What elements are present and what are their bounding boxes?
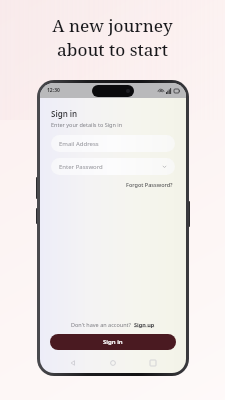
button[interactable]: Recent apps [146,356,160,370]
staticText: Enter Password [59,163,103,171]
staticText: Email Address [59,140,99,148]
staticText: Sign in [51,108,78,119]
staticText: 12:30 [47,87,60,94]
button[interactable]: Sign in [50,334,176,350]
button[interactable]: Back [66,356,80,370]
button[interactable]: Home [106,356,120,370]
staticText: Don't have an account? [71,321,133,328]
staticText: Enter your details to Sign in [51,121,123,128]
staticText: Sign in [103,338,123,346]
button[interactable]: Forgot Password? [124,179,175,190]
staticText: A new journey [52,14,173,37]
other: Show password [162,164,167,169]
button[interactable]: Email Address [51,135,175,152]
button[interactable]: Enter Password [51,158,175,175]
button[interactable]: Sign up [133,320,156,329]
staticText: about to start [57,38,168,61]
